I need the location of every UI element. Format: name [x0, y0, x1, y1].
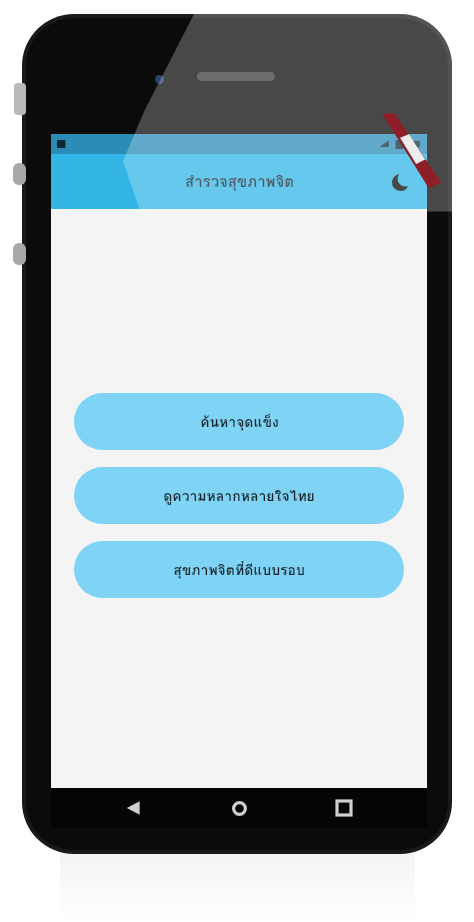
button[interactable]: Toggle dark mode	[385, 167, 415, 197]
staticText: ค้นหาจุดแข็ง	[200, 411, 279, 433]
staticText: สำรวจสุขภาพจิต	[185, 170, 294, 194]
staticText: สุขภาพจิตที่ดีแบบรอบ	[173, 559, 305, 581]
button[interactable]: Home	[217, 788, 261, 828]
button[interactable]: ค้นหาจุดแข็ง	[74, 393, 404, 450]
button[interactable]: Recent apps	[322, 788, 366, 828]
staticText: ดูความหลากหลายใจไทย	[163, 485, 315, 507]
button[interactable]: ดูความหลากหลายใจไทย	[74, 467, 404, 524]
button[interactable]: Back	[112, 788, 156, 828]
button[interactable]: สุขภาพจิตที่ดีแบบรอบ	[74, 541, 404, 598]
